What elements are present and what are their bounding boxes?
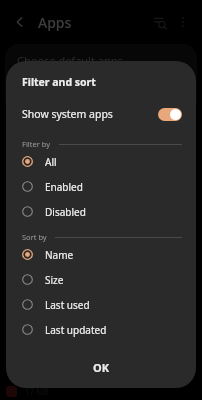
- staticText: Sort by: [22, 232, 47, 242]
- staticText: Enabled: [45, 180, 83, 194]
- staticText: OK: [93, 360, 110, 375]
- staticText: Choose default apps: [17, 53, 123, 68]
- button[interactable]: Size: [6, 267, 196, 292]
- button[interactable]: Show system apps toggle: [158, 108, 182, 121]
- staticText: Disabled: [45, 205, 86, 219]
- staticText: Last updated: [45, 323, 107, 337]
- staticText: Choose which apps to use for making call…: [17, 72, 197, 94]
- staticText: Show system apps: [22, 107, 113, 121]
- staticText: 17 MB: [25, 386, 49, 397]
- button[interactable]: Back: [8, 10, 32, 34]
- button[interactable]: Choose default apps: [5, 44, 197, 114]
- button[interactable]: Disabled: [6, 199, 196, 224]
- button[interactable]: Show system apps: [6, 103, 196, 125]
- staticText: Last used: [45, 298, 90, 312]
- button[interactable]: All: [6, 149, 196, 174]
- staticText: All: [45, 155, 57, 169]
- button[interactable]: Enabled: [6, 174, 196, 199]
- button[interactable]: Name: [6, 242, 196, 267]
- button[interactable]: Search: [148, 10, 172, 34]
- staticText: Name: [45, 248, 74, 262]
- staticText: Size: [45, 273, 64, 287]
- staticText: Apps: [38, 13, 72, 32]
- button[interactable]: OK: [6, 350, 196, 384]
- staticText: Filter and sort: [22, 75, 96, 89]
- staticText: Filter by: [22, 139, 51, 149]
- button[interactable]: Last used: [6, 292, 196, 317]
- button[interactable]: Last updated: [6, 317, 196, 342]
